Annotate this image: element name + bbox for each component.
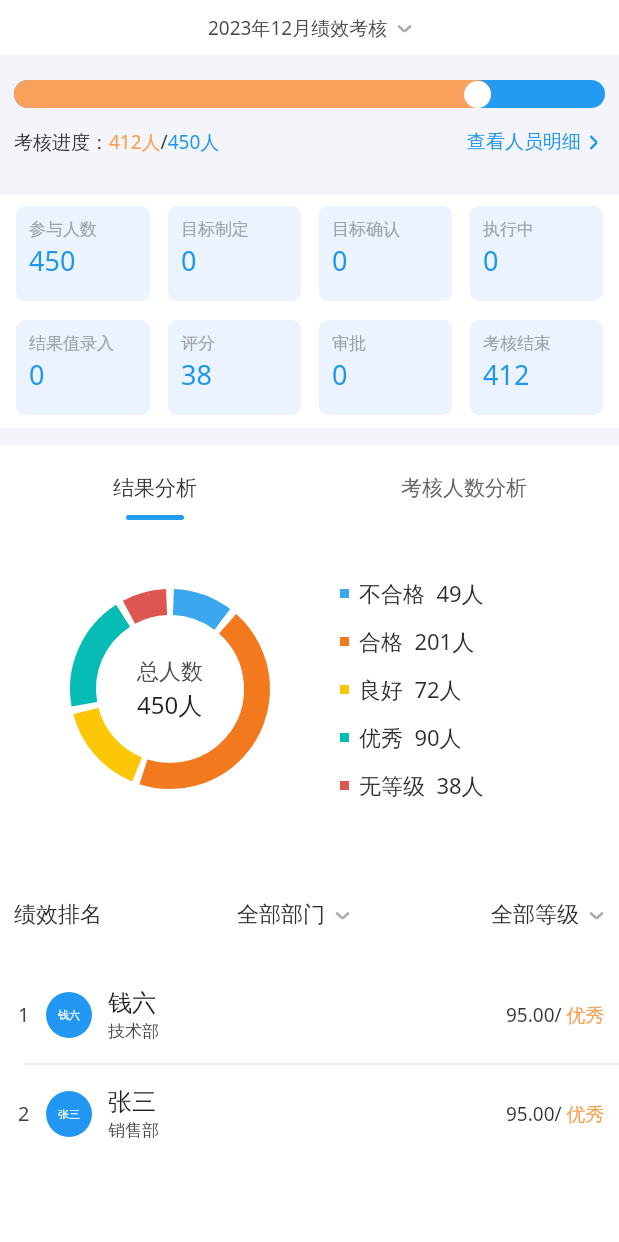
staticText: 95.00/ 优秀 — [506, 1002, 605, 1028]
staticText: 良好 72人 — [359, 674, 462, 704]
staticText: 0 — [181, 242, 197, 279]
button[interactable]: 2 — [0, 1065, 619, 1162]
staticText: 0 — [332, 242, 348, 279]
staticText: 执行中 — [483, 219, 534, 240]
staticText: 450人 — [137, 688, 203, 721]
button[interactable]: 评分 — [168, 320, 301, 415]
staticText: 不合格 49人 — [359, 578, 484, 608]
staticText: 38 — [181, 356, 212, 393]
button[interactable]: 执行中 — [470, 206, 603, 301]
staticText: 考核人数分析 — [401, 475, 527, 501]
staticText: 技术部 — [108, 1021, 159, 1042]
staticText: 0 — [483, 242, 499, 279]
button[interactable]: 结果值录入 — [16, 320, 150, 415]
button[interactable]: 审批 — [319, 320, 452, 415]
button[interactable]: 查看人员明细 — [463, 126, 605, 158]
staticText: 总人数 — [137, 658, 203, 686]
button[interactable]: 参与人数 — [16, 206, 150, 301]
button[interactable]: 1 — [0, 966, 619, 1063]
button[interactable]: 全部等级 — [486, 896, 609, 934]
staticText: 412 — [483, 356, 530, 393]
staticText: 1 — [18, 1001, 30, 1028]
staticText: 2 — [18, 1100, 30, 1127]
staticText: 450 — [29, 242, 76, 279]
staticText: 查看人员明细 — [467, 130, 581, 154]
staticText: 目标制定 — [181, 219, 249, 240]
staticText: 全部部门 — [237, 901, 325, 929]
staticText: 2023年12月绩效考核 — [208, 15, 388, 41]
staticText: 销售部 — [108, 1120, 159, 1141]
staticText: 评分 — [181, 333, 215, 354]
button[interactable]: 目标确认 — [319, 206, 452, 301]
staticText: 考核结束 — [483, 333, 551, 354]
staticText: 考核进度：412人/450人 — [14, 129, 220, 155]
staticText: 无等级 38人 — [359, 770, 484, 800]
button[interactable]: 考核结束 — [470, 320, 603, 415]
button[interactable]: 目标制定 — [168, 206, 301, 301]
staticText: 张三 — [58, 1107, 80, 1121]
staticText: 0 — [29, 356, 45, 393]
staticText: 优秀 90人 — [359, 722, 462, 752]
staticText: 钱六 — [108, 988, 156, 1018]
button[interactable]: 2023年12月绩效考核 — [200, 9, 420, 47]
button[interactable]: 全部部门 — [232, 896, 355, 934]
staticText: 参与人数 — [29, 219, 97, 240]
staticText: 张三 — [108, 1087, 156, 1117]
staticText: 结果值录入 — [29, 333, 114, 354]
button[interactable]: 结果分析 — [0, 445, 309, 534]
staticText: 全部等级 — [491, 901, 579, 929]
staticText: 绩效排名 — [14, 901, 102, 929]
staticText: 95.00/ 优秀 — [506, 1101, 605, 1127]
staticText: 0 — [332, 356, 348, 393]
staticText: 钱六 — [58, 1008, 80, 1022]
staticText: 审批 — [332, 333, 366, 354]
staticText: 目标确认 — [332, 219, 400, 240]
staticText: 合格 201人 — [359, 626, 475, 656]
staticText: 结果分析 — [113, 475, 197, 501]
button[interactable]: 考核人数分析 — [309, 445, 619, 534]
